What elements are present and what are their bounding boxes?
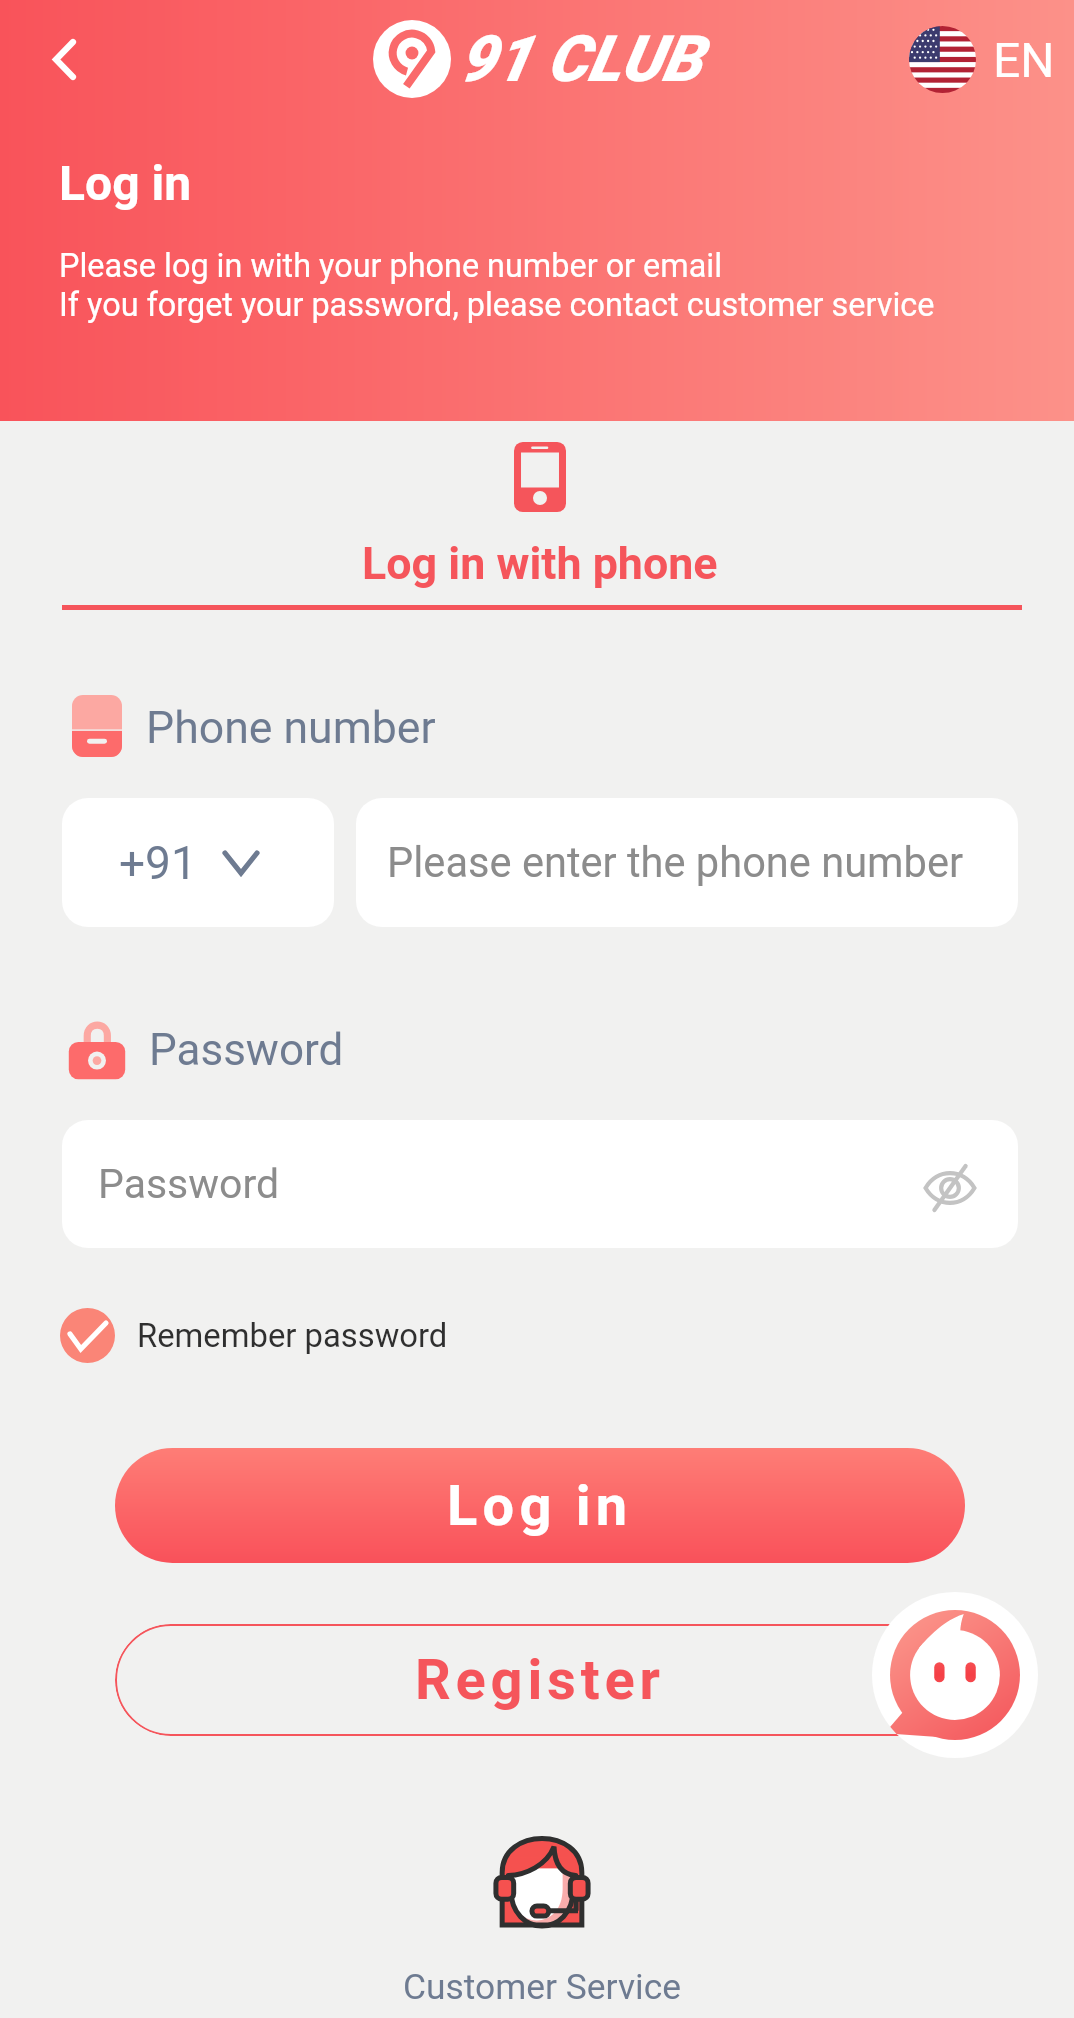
- button[interactable]: Remember password: [60, 1308, 448, 1363]
- staticText: Remember password: [137, 1317, 448, 1355]
- staticText: 91 CLUB: [459, 22, 702, 97]
- staticText: If you forget your password, please cont…: [59, 286, 935, 324]
- staticText: Log in: [59, 155, 192, 211]
- button[interactable]: Customer support chat: [872, 1592, 1038, 1758]
- staticText: Log in with phone: [362, 537, 718, 590]
- button[interactable]: EN: [909, 26, 1055, 93]
- staticText: Password: [149, 1024, 344, 1076]
- staticText: Password: [98, 1160, 280, 1208]
- button[interactable]: Log in with phone: [0, 432, 1074, 590]
- button[interactable]: +91: [62, 798, 334, 927]
- staticText: +91: [119, 836, 197, 890]
- button[interactable]: Show password: [916, 1150, 984, 1218]
- button[interactable]: Customer Service: [0, 1826, 1074, 2007]
- button[interactable]: Password: [62, 1120, 1018, 1248]
- staticText: EN: [993, 32, 1055, 88]
- button[interactable]: Please enter the phone number: [356, 798, 1018, 927]
- staticText: Customer Service: [403, 1966, 681, 2007]
- staticText: Please log in with your phone number or …: [59, 247, 723, 285]
- button[interactable]: Back: [20, 15, 108, 103]
- staticText: Please enter the phone number: [387, 838, 964, 887]
- button[interactable]: Log in: [115, 1448, 965, 1563]
- button[interactable]: Register: [115, 1624, 965, 1736]
- staticText: Log in: [447, 1473, 633, 1539]
- staticText: Register: [415, 1647, 665, 1713]
- staticText: Phone number: [146, 702, 436, 754]
